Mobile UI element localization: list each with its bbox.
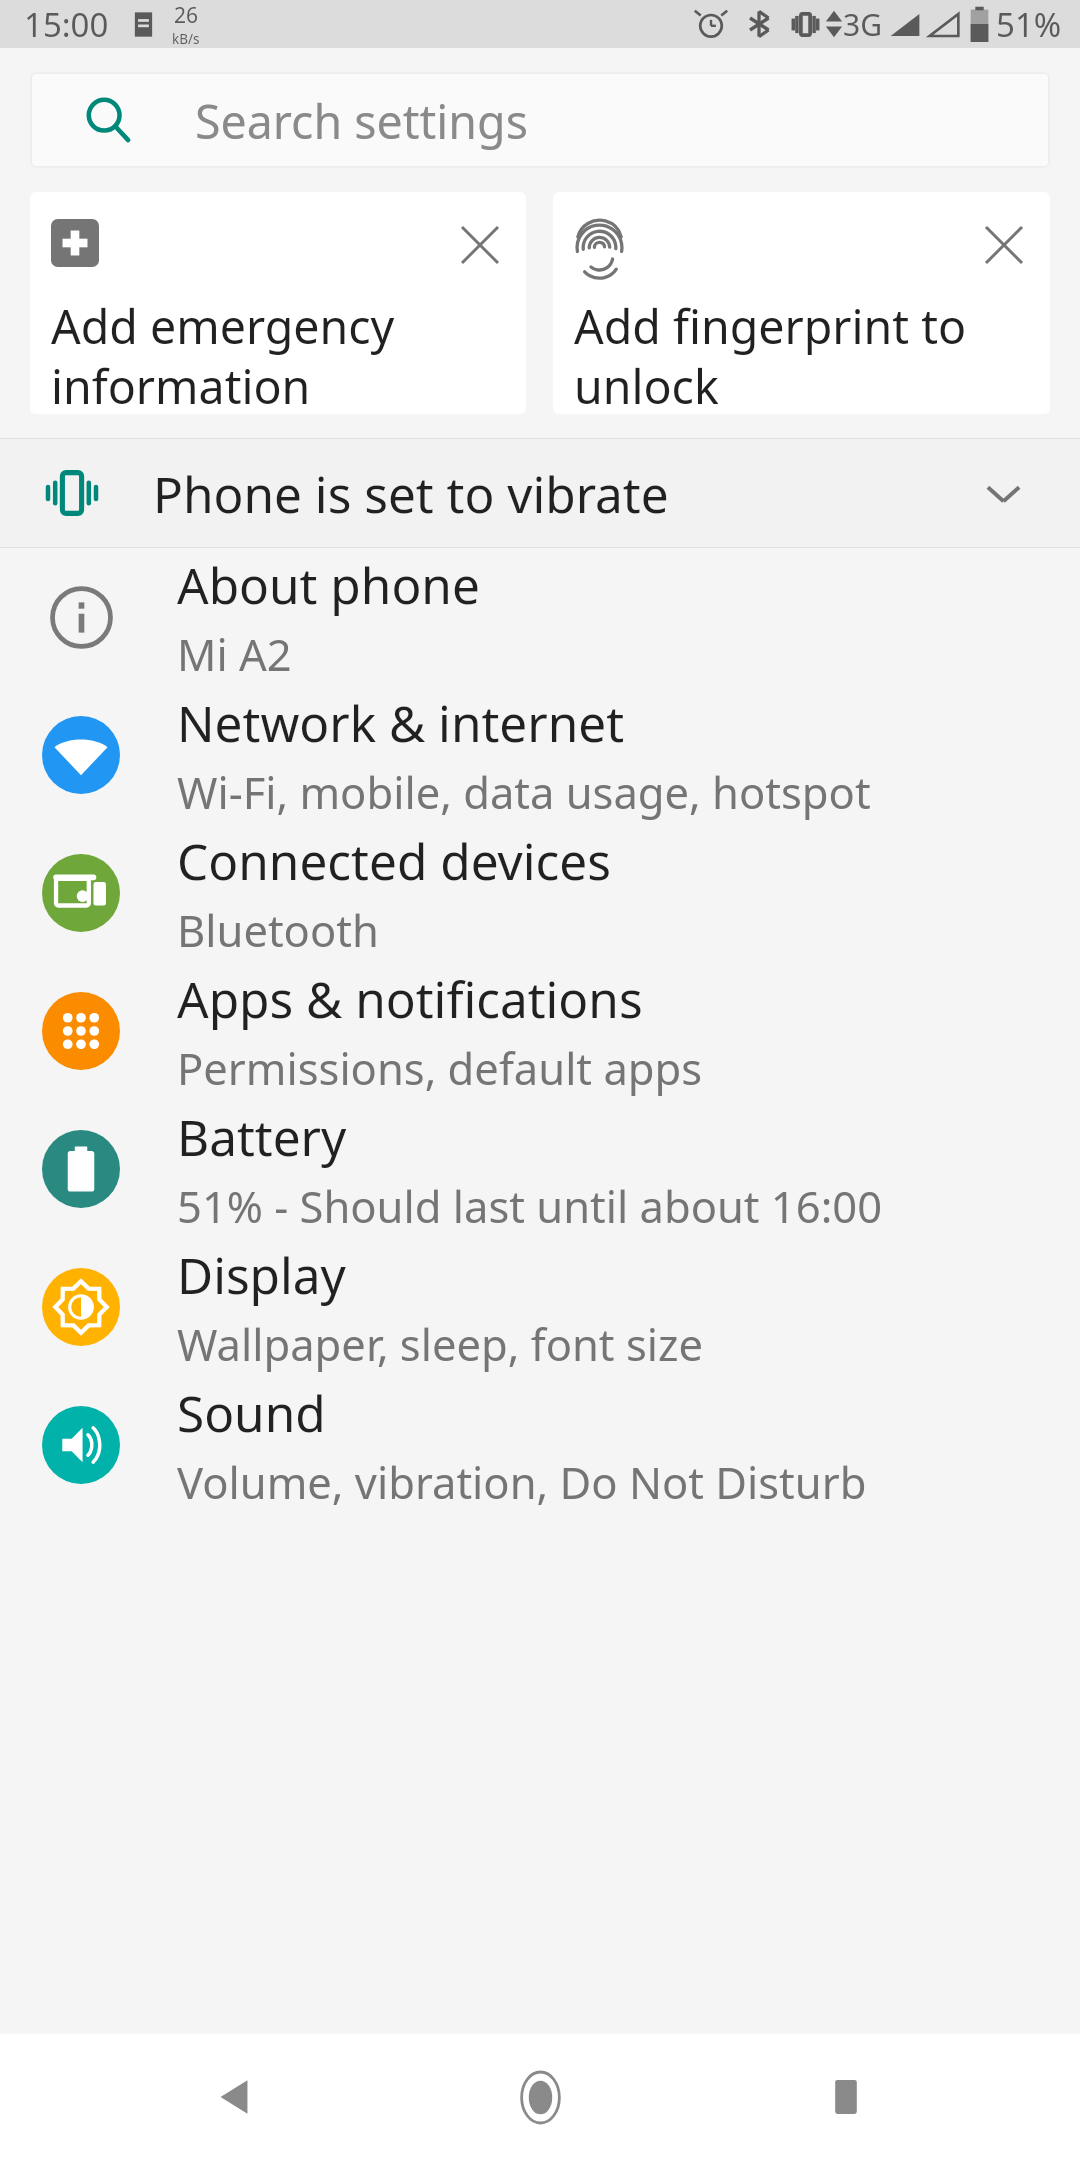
staticText: Wi-Fi, mobile, data usage, hotspot	[177, 762, 871, 821]
button[interactable]: Display	[0, 1238, 1080, 1376]
button[interactable]: Battery	[0, 1100, 1080, 1238]
button[interactable]: Search settings	[30, 72, 1050, 168]
button[interactable]: Sound	[0, 1376, 1080, 1514]
button[interactable]: Dismiss	[553, 192, 1050, 414]
staticText: Add fingerprint to unlock	[574, 294, 967, 414]
staticText: About phone	[177, 551, 480, 618]
button[interactable]: Recent apps	[774, 2034, 918, 2160]
staticText: Phone is set to vibrate	[153, 460, 669, 527]
staticText: Bluetooth	[177, 900, 379, 959]
button[interactable]: Network & internet	[0, 686, 1080, 824]
staticText: Battery	[177, 1103, 347, 1170]
staticText: Volume, vibration, Do Not Disturb	[177, 1452, 867, 1511]
staticText: Apps & notifications	[177, 965, 643, 1032]
button[interactable]: Phone is set to vibrate	[0, 439, 1080, 547]
button[interactable]: Apps & notifications	[0, 962, 1080, 1100]
staticText: 3G	[843, 4, 882, 45]
staticText: 26	[174, 1, 199, 30]
button[interactable]: About phone	[0, 548, 1080, 686]
staticText: Mi A2	[177, 624, 292, 683]
staticText: Sound	[177, 1379, 326, 1446]
staticText: Wallpaper, sleep, font size	[177, 1314, 703, 1373]
staticText: 51%	[996, 2, 1062, 47]
button[interactable]: Dismiss	[454, 219, 505, 270]
staticText: Network & internet	[177, 689, 625, 756]
staticText: Add emergency information	[51, 294, 395, 414]
staticText: kB/s	[172, 30, 200, 48]
button[interactable]: Home	[468, 2034, 612, 2160]
staticText: 51% - Should last until about 16:00	[177, 1176, 883, 1235]
button[interactable]: Connected devices	[0, 824, 1080, 962]
staticText: Search settings	[195, 89, 528, 152]
staticText: 15:00	[24, 2, 109, 47]
button[interactable]: Back	[162, 2034, 306, 2160]
button[interactable]: Dismiss	[30, 192, 526, 414]
button[interactable]: Dismiss	[978, 219, 1029, 270]
staticText: Permissions, default apps	[177, 1038, 703, 1097]
staticText: Connected devices	[177, 827, 611, 894]
staticText: Display	[177, 1241, 346, 1308]
